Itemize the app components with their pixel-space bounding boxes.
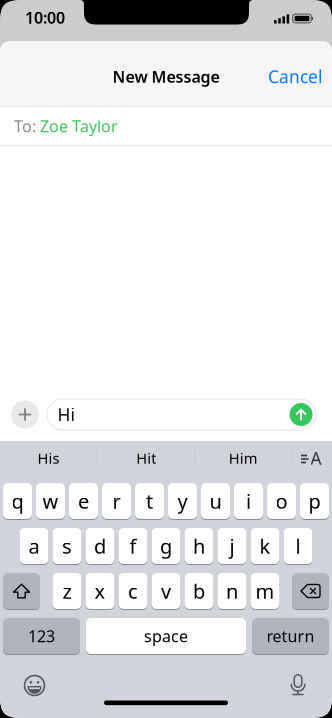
staticText: x [94,578,105,604]
button[interactable]: Send [289,403,312,426]
button[interactable]: k [250,527,279,564]
button[interactable]: j [217,527,246,564]
button[interactable]: y [168,482,197,519]
staticText: b [193,578,205,604]
button[interactable]: f [118,527,147,564]
button[interactable]: r [102,482,131,519]
staticText: Zoe Taylor [40,115,118,137]
staticText: 10:00 [25,7,65,28]
button[interactable]: Numbers [3,617,80,654]
staticText: New Message [112,66,219,87]
button[interactable]: To: Zoe Taylor [0,107,332,145]
button[interactable]: g [151,527,180,564]
button[interactable]: e [69,482,98,519]
button[interactable]: Him [195,441,291,475]
staticText: h [193,533,205,559]
button[interactable]: x [85,572,114,609]
staticText: His [37,448,59,468]
staticText: r [112,488,120,514]
button[interactable]: s [52,527,81,564]
staticText: y [177,488,187,514]
staticText: Hi [57,403,74,426]
button[interactable]: Predictions [300,449,324,467]
button[interactable]: Attach [11,400,39,428]
button[interactable]: v [151,572,180,609]
staticText: p [308,488,320,514]
staticText: j [229,533,234,559]
button[interactable]: u [201,482,230,519]
button[interactable]: Hit [98,441,195,475]
button[interactable]: o [267,482,296,519]
button[interactable]: d [85,527,114,564]
staticText: o [275,488,287,514]
staticText: c [128,578,138,604]
staticText: a [28,533,39,559]
button[interactable]: t [135,482,164,519]
staticText: u [209,488,221,514]
button[interactable]: q [3,482,32,519]
staticText: To: [14,115,36,137]
button[interactable]: Message text field [47,399,316,430]
staticText: 123 [28,625,55,647]
staticText: w [42,488,58,514]
button[interactable]: z [52,572,81,609]
staticText: s [62,533,72,559]
staticText: q [11,488,23,514]
staticText: A [310,446,321,469]
staticText: v [161,578,171,604]
staticText: d [94,533,106,559]
staticText: e [78,488,89,514]
button[interactable]: p [300,482,329,519]
button[interactable]: Delete [292,572,329,609]
button[interactable]: h [184,527,213,564]
button[interactable]: i [234,482,263,519]
button[interactable]: Emoji [23,674,45,696]
staticText: m [255,578,274,604]
button[interactable]: Cancel [268,65,322,88]
button[interactable]: His [0,441,97,475]
staticText: z [62,578,71,604]
staticText: l [295,533,300,559]
staticText: space [144,625,188,647]
staticText: t [146,488,153,514]
staticText: f [129,533,136,559]
button[interactable]: Dictation [288,674,308,696]
button[interactable]: Space [86,617,246,654]
staticText: n [226,578,238,604]
staticText: Him [229,448,258,468]
button[interactable]: l [283,527,312,564]
button[interactable]: Return [252,617,329,654]
button[interactable]: Shift [3,572,40,609]
staticText: Hit [136,448,156,468]
button[interactable]: b [184,572,213,609]
staticText: i [246,488,251,514]
button[interactable]: n [217,572,246,609]
staticText: k [259,533,270,559]
button[interactable]: a [19,527,48,564]
button[interactable]: c [118,572,147,609]
staticText: return [266,625,314,647]
staticText: Cancel [268,65,322,88]
button[interactable]: m [250,572,279,609]
staticText: g [160,533,172,559]
button[interactable]: w [36,482,65,519]
